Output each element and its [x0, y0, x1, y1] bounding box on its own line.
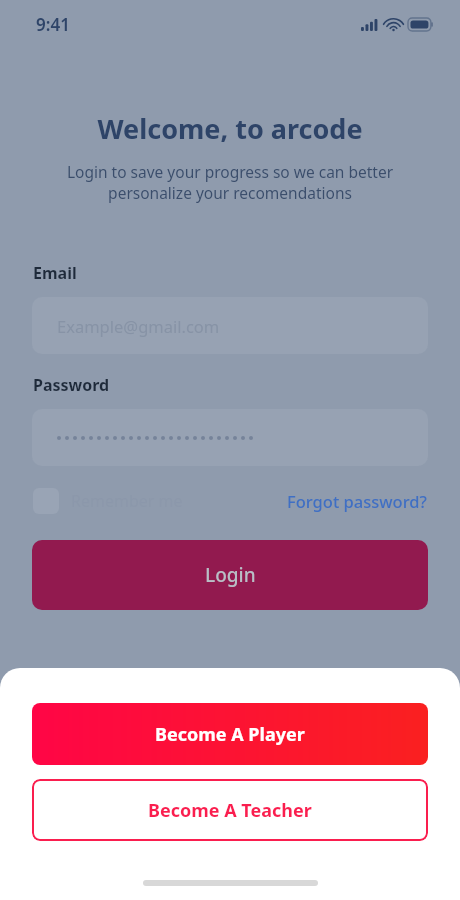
button[interactable]: Remember me: [33, 488, 183, 514]
staticText: Email: [33, 262, 77, 284]
staticText: Welcome, to arcode: [0, 110, 460, 147]
button[interactable]: Login: [32, 540, 428, 610]
button[interactable]: Forgot password?: [287, 490, 427, 512]
staticText: Login to save your progress so we can be…: [34, 161, 426, 204]
staticText: Password: [33, 374, 110, 396]
button[interactable]: Become A Teacher: [32, 779, 428, 841]
staticText: Login: [205, 562, 256, 588]
staticText: Become A Player: [155, 722, 305, 747]
staticText: Become A Teacher: [148, 798, 312, 823]
staticText: 9:41: [36, 13, 70, 36]
staticText: Example@gmail.com: [57, 315, 220, 337]
button[interactable]: Become A Player: [32, 703, 428, 765]
button[interactable]: [32, 409, 428, 466]
